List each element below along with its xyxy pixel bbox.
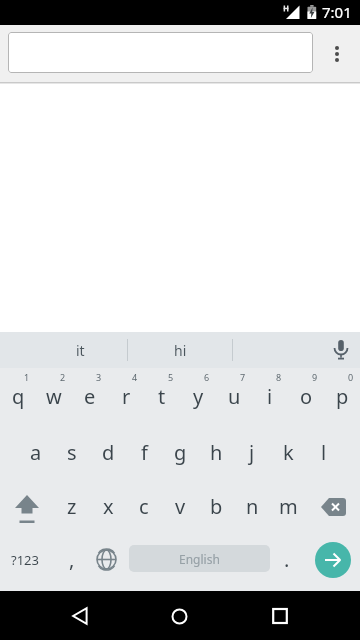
- staticText: 4: [132, 371, 138, 383]
- staticText: 7: [240, 371, 246, 383]
- staticText: u: [228, 383, 241, 410]
- button[interactable]: f: [126, 425, 162, 480]
- staticText: j: [249, 439, 255, 466]
- staticText: p: [336, 383, 349, 410]
- staticText: m: [279, 493, 298, 520]
- button[interactable]: e: [72, 368, 108, 424]
- staticText: q: [12, 383, 25, 410]
- staticText: d: [102, 439, 115, 466]
- button[interactable]: x: [90, 480, 126, 533]
- button[interactable]: w: [36, 368, 72, 424]
- staticText: t: [158, 383, 166, 410]
- button[interactable]: k: [270, 425, 306, 480]
- button[interactable]: l: [306, 425, 342, 480]
- button[interactable]: u: [216, 368, 252, 424]
- staticText: 7:01: [322, 2, 352, 22]
- staticText: h: [210, 439, 223, 466]
- button[interactable]: z: [54, 480, 90, 533]
- button[interactable]: [0, 480, 54, 533]
- staticText: r: [122, 383, 131, 410]
- button[interactable]: m: [270, 480, 306, 533]
- staticText: 5: [168, 371, 174, 383]
- button[interactable]: c: [126, 480, 162, 533]
- staticText: i: [267, 383, 273, 410]
- staticText: s: [67, 439, 77, 466]
- button[interactable]: d: [90, 425, 126, 480]
- button[interactable]: r: [108, 368, 144, 424]
- button[interactable]: o: [288, 368, 324, 424]
- staticText: y: [193, 383, 204, 410]
- staticText: k: [283, 439, 294, 466]
- staticText: it: [76, 341, 85, 360]
- button[interactable]: s: [54, 425, 90, 480]
- staticText: 1: [24, 371, 30, 383]
- button[interactable]: [315, 542, 351, 578]
- button[interactable]: ,: [50, 529, 94, 589]
- button[interactable]: t: [144, 368, 180, 424]
- button[interactable]: [62, 598, 98, 634]
- button[interactable]: [8, 32, 313, 73]
- button[interactable]: y: [180, 368, 216, 424]
- button[interactable]: English: [129, 545, 270, 572]
- button[interactable]: h: [198, 425, 234, 480]
- staticText: f: [141, 439, 148, 466]
- staticText: ,: [69, 546, 75, 573]
- staticText: 0: [348, 371, 354, 383]
- button[interactable]: it: [55, 332, 105, 368]
- button[interactable]: [330, 339, 352, 361]
- staticText: x: [103, 493, 114, 520]
- staticText: 9: [312, 371, 318, 383]
- staticText: a: [30, 439, 42, 466]
- staticText: b: [210, 493, 223, 520]
- staticText: w: [46, 383, 62, 410]
- button[interactable]: i: [252, 368, 288, 424]
- staticText: e: [84, 383, 96, 410]
- button[interactable]: g: [162, 425, 198, 480]
- button[interactable]: b: [198, 480, 234, 533]
- staticText: l: [321, 439, 327, 466]
- button[interactable]: q: [0, 368, 36, 424]
- button[interactable]: [262, 598, 298, 634]
- staticText: 6: [204, 371, 210, 383]
- staticText: v: [175, 493, 186, 520]
- button[interactable]: [161, 598, 197, 634]
- button[interactable]: v: [162, 480, 198, 533]
- staticText: 3: [96, 371, 102, 383]
- staticText: g: [174, 439, 187, 466]
- button[interactable]: j: [234, 425, 270, 480]
- staticText: c: [139, 493, 149, 520]
- button[interactable]: [88, 533, 124, 585]
- button[interactable]: p: [324, 368, 360, 424]
- button[interactable]: .: [270, 529, 304, 589]
- button[interactable]: [325, 42, 349, 66]
- staticText: hi: [174, 341, 187, 360]
- staticText: 2: [60, 371, 66, 383]
- button[interactable]: a: [18, 425, 54, 480]
- button[interactable]: hi: [155, 332, 205, 368]
- button[interactable]: n: [234, 480, 270, 533]
- button[interactable]: ?123: [0, 533, 50, 587]
- button[interactable]: [306, 480, 360, 533]
- staticText: .: [284, 546, 290, 573]
- staticText: English: [179, 551, 220, 567]
- staticText: o: [300, 383, 313, 410]
- staticText: ?123: [11, 551, 39, 569]
- staticText: z: [67, 493, 77, 520]
- staticText: n: [246, 493, 259, 520]
- staticText: 8: [276, 371, 282, 383]
